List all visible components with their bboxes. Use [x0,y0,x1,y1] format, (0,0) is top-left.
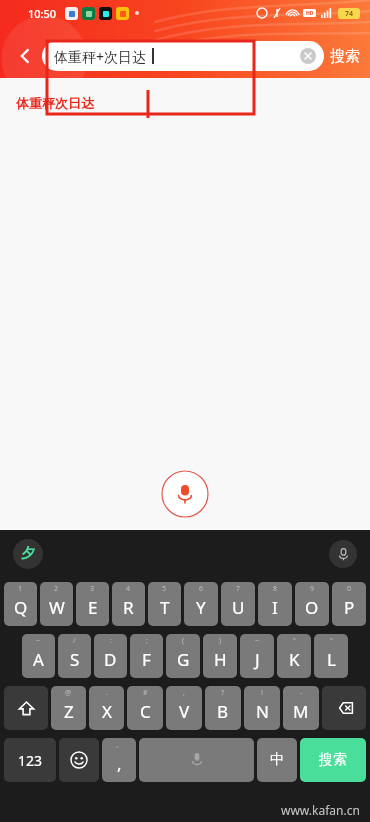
staticText: 10:50 [28,6,57,21]
button[interactable]: Shift [4,686,48,730]
button[interactable]: ~ [240,634,274,678]
button[interactable]: Clear [300,48,316,64]
button[interactable]: 1 [4,582,37,626]
button[interactable]: Emoji [59,738,99,782]
staticText: U [232,596,245,619]
button[interactable]: # [127,686,163,730]
staticText: ( [182,636,185,646]
staticText: 123 [18,751,43,770]
button[interactable]: 搜索 [300,738,366,782]
staticText: / [73,636,76,646]
staticText: M [293,700,309,723]
staticText: P [344,596,355,619]
staticText: . [106,688,108,698]
staticText: Y [196,596,206,619]
staticText: 体重秤次日达 [16,95,94,111]
button[interactable]: ? [205,686,241,730]
button[interactable]: , [166,686,202,730]
button[interactable]: " [277,634,311,678]
button[interactable]: 4 [112,582,145,626]
button[interactable]: Input method [13,539,43,569]
staticText: E [88,596,98,619]
button[interactable]: 搜索 [330,47,360,66]
staticText: 体重秤+次日达 [54,47,147,66]
staticText: K [289,648,300,671]
staticText: S [70,648,80,671]
staticText: 3 [90,584,95,594]
staticText: 中 [270,751,284,769]
staticText: ? [221,688,225,698]
staticText: T [160,596,170,619]
button[interactable]: / [58,634,91,678]
button[interactable]: ) [203,634,237,678]
button[interactable]: Voice input [329,540,357,568]
staticText: O [305,596,319,619]
button[interactable]: 5 [148,582,181,626]
staticText: ~ [36,636,41,646]
button[interactable]: ~ [22,634,55,678]
staticText: 搜索 [319,751,347,769]
staticText: , [183,688,185,698]
staticText: C [140,700,151,723]
button[interactable]: 3 [76,582,109,626]
staticText: 夕 [21,545,35,563]
button[interactable]: Back [8,39,42,73]
button[interactable]: ! [244,686,280,730]
button[interactable]: 中 [257,738,297,782]
staticText: " [293,636,296,646]
staticText: # [143,688,148,698]
staticText: 0 [347,584,352,594]
staticText: N [256,700,269,723]
button[interactable]: 体重秤+次日达 [42,41,324,71]
staticText: 5 [162,584,167,594]
button[interactable]: ( [166,634,200,678]
button[interactable]: @ [51,686,86,730]
staticText: " [330,636,333,646]
staticText: 8 [273,584,278,594]
staticText: 4 [126,584,131,594]
staticText: ! [261,688,263,698]
staticText: R [123,596,134,619]
staticText: F [142,648,151,671]
staticText: D [104,648,117,671]
staticText: ~ [255,636,260,646]
staticText: I [272,596,278,619]
staticText: W [49,596,65,619]
button[interactable]: Voice search [161,470,209,518]
button[interactable]: . [89,686,124,730]
staticText: 6 [199,584,204,594]
button[interactable]: 0 [332,582,366,626]
staticText: H [214,648,227,671]
staticText: 2 [54,584,59,594]
button[interactable]: 2 [40,582,73,626]
staticText: HD [306,10,314,17]
staticText: @ [65,688,72,698]
staticText: J [255,648,260,671]
staticText: V [179,700,190,723]
staticText: ; [146,636,148,646]
staticText: Q [14,596,28,619]
button[interactable]: Backspace [322,686,366,730]
button[interactable]: - [283,686,319,730]
staticText: 74 [345,9,354,19]
staticText: , [117,752,122,775]
button[interactable]: 6 [184,582,218,626]
button[interactable]: " [314,634,348,678]
button[interactable]: 8 [258,582,292,626]
button[interactable]: 123 [4,738,56,782]
staticText: ) [219,636,222,646]
staticText: Z [64,700,74,723]
staticText: 7 [236,584,241,594]
button[interactable]: ; [130,634,163,678]
staticText: G [177,648,190,671]
staticText: 。 [116,740,123,749]
button[interactable]: 。 [102,738,136,782]
button[interactable]: 7 [221,582,255,626]
staticText: www.kafan.cn [281,802,360,818]
button[interactable]: 9 [295,582,329,626]
button[interactable]: : [94,634,127,678]
button[interactable]: Space [139,738,254,782]
staticText: B [217,700,229,723]
staticText: : [110,636,112,646]
staticText: A [33,648,44,671]
